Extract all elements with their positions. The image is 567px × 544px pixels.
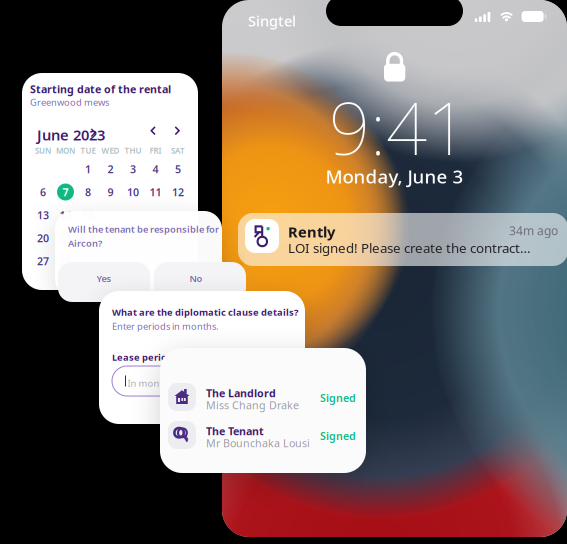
staticText: 7	[62, 185, 68, 199]
staticText: 5	[175, 162, 181, 176]
staticText: 28	[59, 254, 71, 268]
button[interactable]: June 2023	[22, 73, 198, 290]
button[interactable]: The Tenant	[160, 348, 366, 473]
staticText: 3	[130, 162, 136, 176]
staticText: 6	[40, 185, 46, 199]
staticText: 11	[149, 185, 161, 199]
staticText: Aircon?	[68, 237, 102, 249]
staticText: 4	[152, 162, 158, 176]
staticText: LOI signed! Please create the contract…	[288, 239, 531, 257]
staticText: The Tenant	[206, 424, 264, 438]
staticText: No	[189, 272, 202, 285]
staticText: Rently	[288, 222, 335, 241]
staticText: In months	[127, 377, 172, 389]
staticText: What are the diplomatic clause details?	[112, 306, 298, 318]
staticText: 2	[107, 162, 113, 176]
staticText: 20	[37, 231, 49, 245]
staticText: Will the tenant be responsible for	[68, 223, 219, 235]
staticText: WED	[101, 145, 119, 156]
staticText: 14	[59, 208, 71, 222]
button[interactable]: Next month	[22, 73, 198, 290]
staticText: 27	[37, 254, 49, 268]
staticText: 12	[172, 185, 184, 199]
staticText: THU	[124, 145, 141, 156]
staticText: TUE	[80, 145, 95, 156]
button[interactable]: Yes	[55, 211, 222, 297]
staticText: SAT	[171, 145, 185, 156]
button[interactable]: No	[55, 211, 222, 297]
staticText: Miss Chang Drake	[206, 398, 299, 412]
staticText: Lease period	[112, 351, 173, 363]
staticText: 21	[59, 231, 71, 245]
staticText: June 2023	[37, 125, 105, 144]
staticText: 9	[107, 185, 113, 199]
staticText: Starting date of the rental	[30, 82, 171, 96]
staticText: 10	[127, 185, 139, 199]
staticText: MON	[56, 145, 75, 156]
staticText: 9:41	[329, 79, 468, 175]
button[interactable]: Rently	[238, 213, 567, 266]
staticText: Signed	[320, 429, 356, 443]
staticText: 1	[85, 162, 91, 176]
staticText: Mr Bounchaka Lousi	[206, 436, 310, 450]
staticText: SUN	[35, 145, 51, 156]
staticText: Yes	[96, 272, 111, 285]
staticText: 13	[37, 208, 49, 222]
button[interactable]: The Landlord	[160, 348, 366, 473]
staticText: FRI	[149, 145, 161, 156]
staticText: 34m ago	[509, 223, 558, 238]
staticText: 15	[82, 208, 94, 222]
staticText: Singtel	[248, 11, 296, 30]
staticText: The Landlord	[206, 386, 276, 400]
staticText: Signed	[320, 391, 356, 405]
button[interactable]: Previous month	[22, 73, 198, 290]
staticText: Monday, June 3	[325, 164, 463, 189]
staticText: Greenwood mews	[30, 96, 109, 108]
staticText: Enter periods in months.	[112, 320, 219, 332]
staticText: 8	[85, 185, 91, 199]
